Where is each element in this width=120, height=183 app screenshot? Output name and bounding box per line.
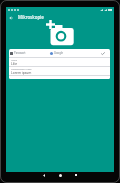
button[interactable]: Google xyxy=(50,51,64,55)
staticText: Mikroskopie xyxy=(18,14,44,20)
staticText: Lorem ipsum xyxy=(11,70,32,74)
staticText: Wissenschaftl. Name xyxy=(11,68,32,71)
button[interactable]: Name xyxy=(9,58,110,66)
staticText: Name xyxy=(11,59,17,62)
button[interactable]: Wissenschaftl. Name xyxy=(9,67,110,75)
button[interactable]: Recent apps xyxy=(70,169,82,181)
staticText: Passwort xyxy=(14,51,26,55)
button[interactable]: Confirm xyxy=(99,49,107,57)
button[interactable]: Back xyxy=(7,14,15,22)
button[interactable]: Home xyxy=(54,169,66,181)
staticText: Lilie xyxy=(11,61,18,65)
button[interactable]: Passwort xyxy=(10,51,26,55)
staticText: Google xyxy=(54,51,64,55)
button[interactable]: Back xyxy=(38,169,50,181)
